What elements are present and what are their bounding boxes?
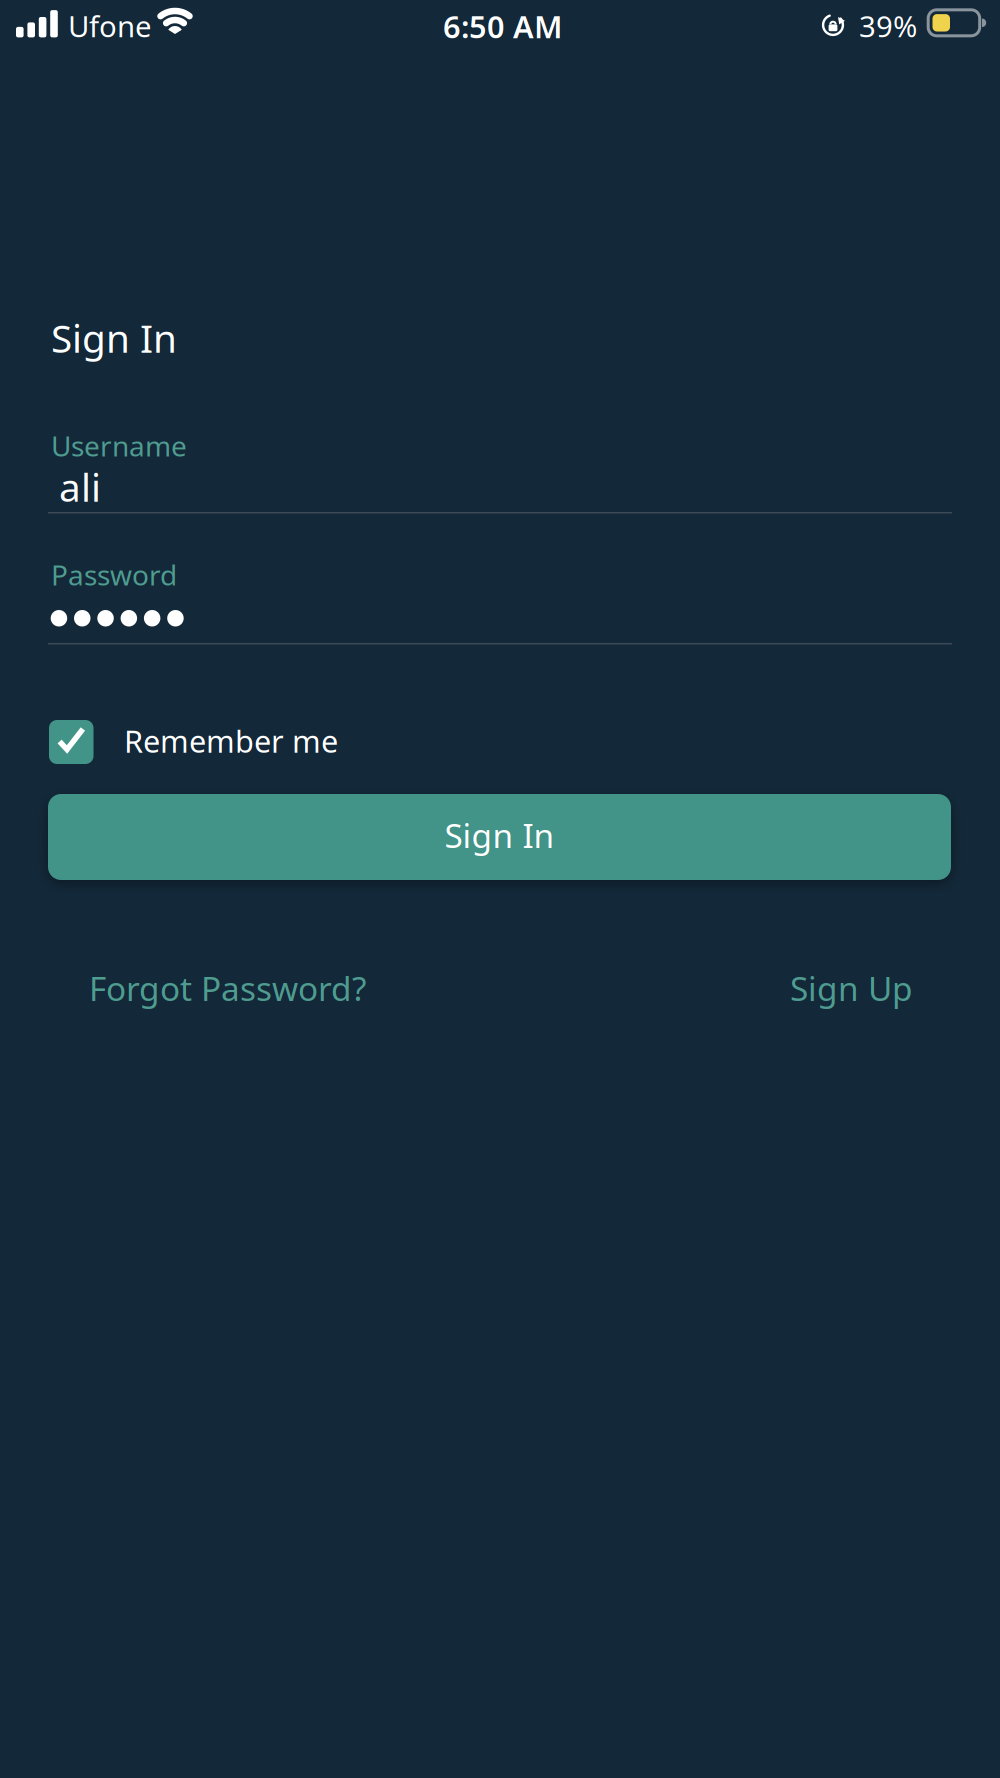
staticText: Ufone [68,6,152,45]
staticText: Remember me [124,720,338,761]
staticText: Password [51,556,177,593]
staticText: Sign Up [790,966,913,1010]
button[interactable]: Remember me [49,720,263,764]
button[interactable]: Forgot Password? [89,966,366,1010]
staticText: 39% [859,6,917,45]
staticText: ali [59,461,101,512]
staticText: Forgot Password? [89,966,366,1010]
staticText: Sign In [51,312,177,363]
staticText: 6:50 AM [443,6,562,47]
button[interactable]: Sign Up [790,966,913,1010]
staticText: Sign In [444,813,554,857]
staticText: Username [51,427,187,464]
button[interactable]: Sign In [48,794,951,880]
